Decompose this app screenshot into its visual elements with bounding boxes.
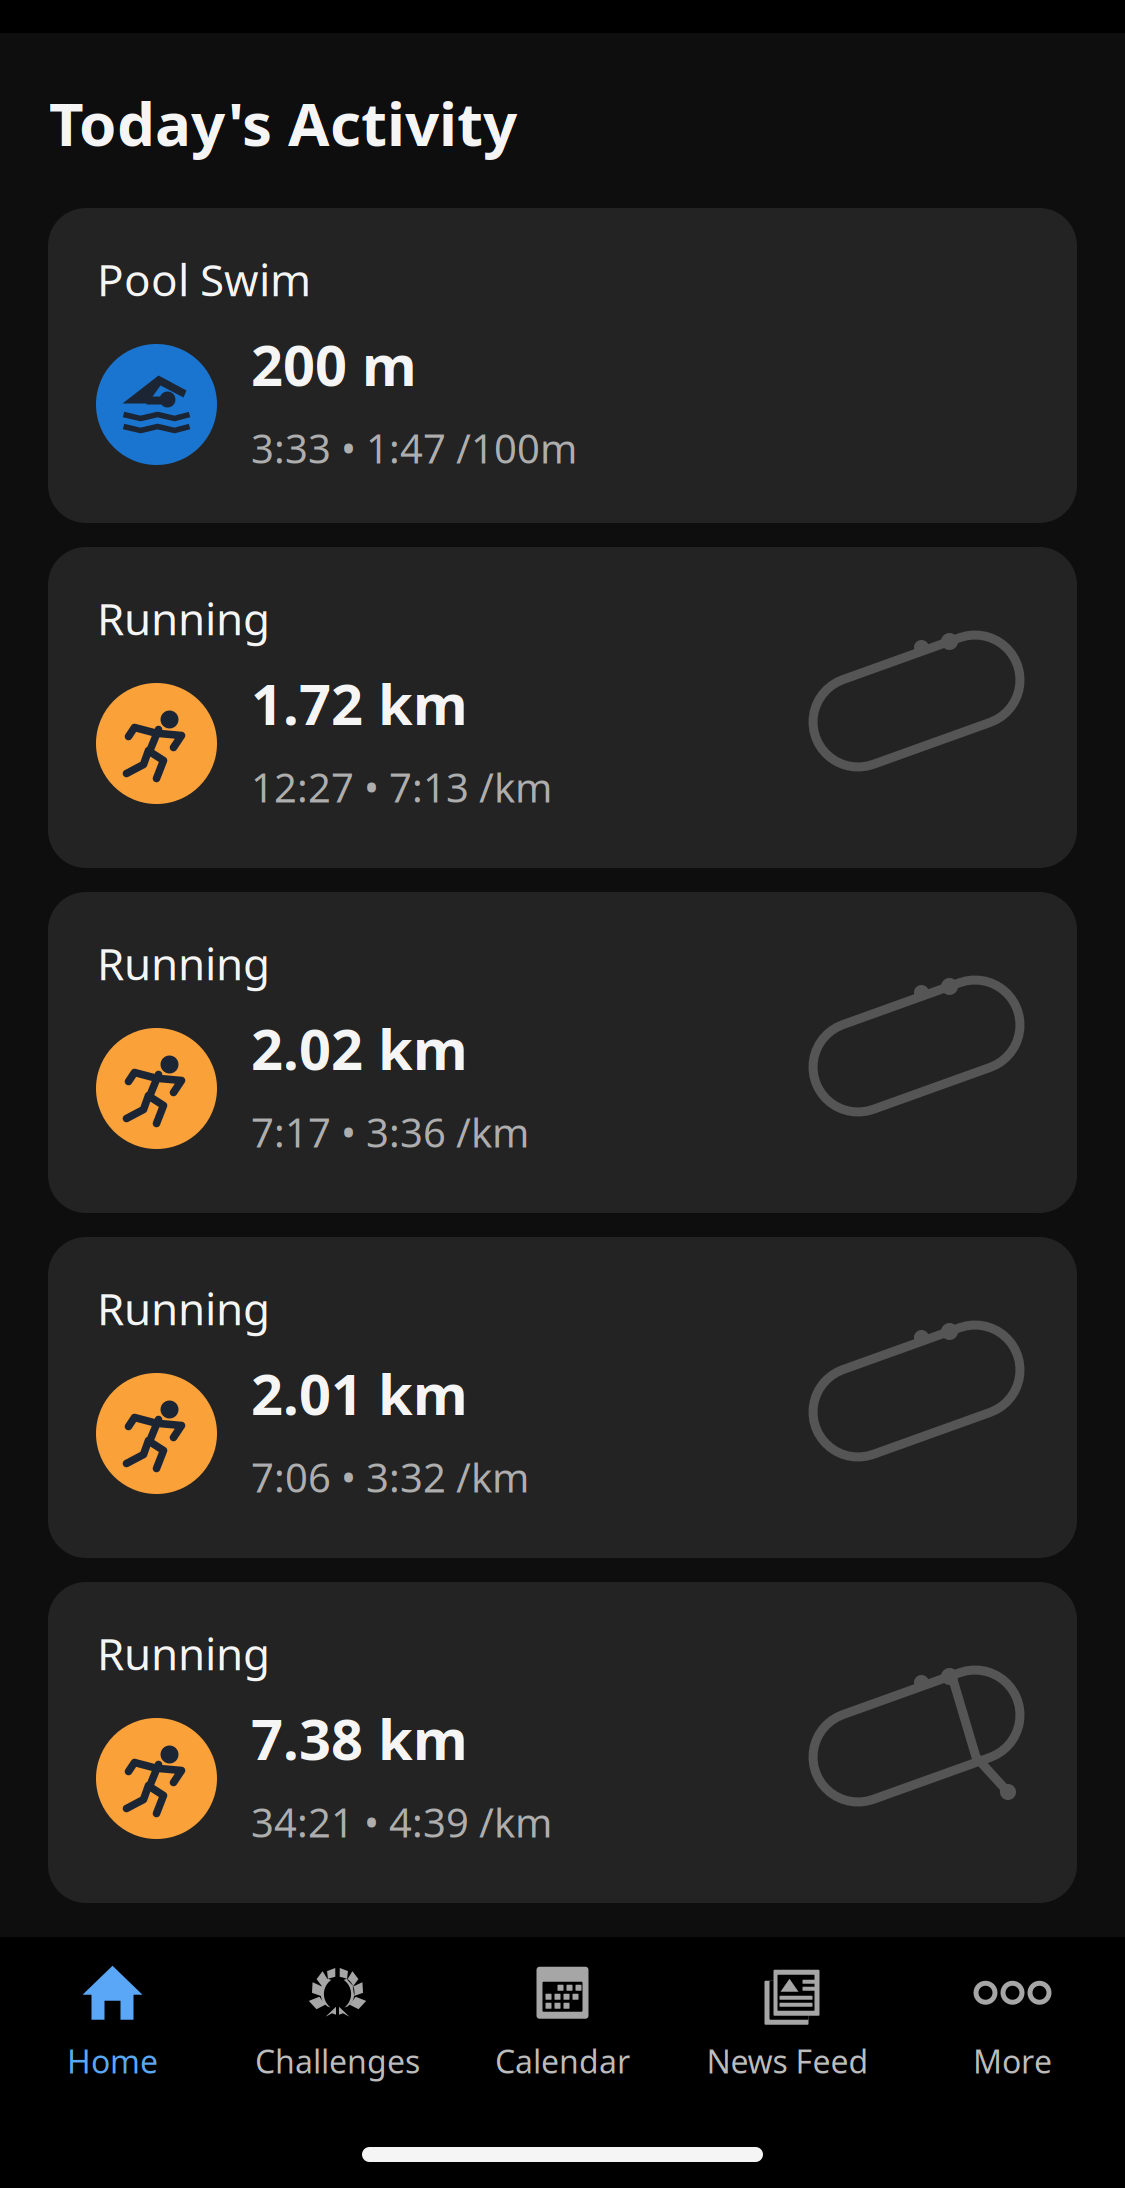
staticText: Running: [97, 934, 270, 992]
staticText: 3:33 • 1:47 /100m: [251, 421, 577, 474]
staticText: 200 m: [251, 327, 417, 401]
staticText: 2.02 km: [251, 1011, 468, 1085]
staticText: Home: [67, 2040, 158, 2082]
button[interactable]: More: [900, 1937, 1125, 2075]
button[interactable]: Challenges: [225, 1937, 450, 2075]
staticText: 34:21 • 4:39 /km: [251, 1795, 552, 1848]
button[interactable]: Calendar: [450, 1937, 675, 2075]
staticText: 7:17 • 3:36 /km: [251, 1105, 529, 1158]
staticText: Running: [97, 589, 270, 647]
staticText: Challenges: [255, 2040, 420, 2082]
staticText: 2.01 km: [251, 1356, 468, 1430]
staticText: 12:27 • 7:13 /km: [251, 760, 552, 813]
button[interactable]: Running: [48, 1582, 1077, 1903]
staticText: Pool Swim: [97, 250, 311, 308]
button[interactable]: Running: [48, 1237, 1077, 1558]
staticText: 1.72 km: [251, 666, 468, 740]
button[interactable]: News Feed: [675, 1937, 900, 2075]
staticText: 7:06 • 3:32 /km: [251, 1450, 529, 1503]
staticText: Today's Activity: [49, 83, 517, 163]
staticText: Calendar: [495, 2040, 630, 2082]
staticText: News Feed: [706, 2040, 868, 2082]
staticText: Running: [97, 1624, 270, 1682]
button[interactable]: Home: [0, 1937, 225, 2075]
button[interactable]: Running: [48, 892, 1077, 1213]
button[interactable]: Pool Swim: [48, 208, 1077, 523]
button[interactable]: Running: [48, 547, 1077, 868]
staticText: 7.38 km: [251, 1701, 468, 1775]
staticText: More: [973, 2040, 1052, 2082]
staticText: Running: [97, 1279, 270, 1337]
